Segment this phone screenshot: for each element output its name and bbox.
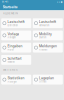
button[interactable]: Lastschrift: [33, 18, 63, 28]
button[interactable]: Mobility: [33, 30, 63, 40]
button[interactable]: Statistiken: [1, 75, 31, 84]
staticText: ▪ ▪ ▮: [57, 0, 62, 3]
button[interactable]: Lastschrift: [1, 18, 31, 28]
staticText: Prüfen: [7, 48, 13, 51]
staticText: Ansehen: [39, 48, 47, 51]
staticText: Wählen: [7, 61, 14, 63]
staticText: Öffnen: [39, 80, 46, 83]
button[interactable]: Eingaben: [1, 43, 31, 52]
staticText: Starten: [39, 36, 46, 39]
staticText: Eingaben: [7, 44, 22, 48]
button[interactable]: Vorlage: [1, 30, 31, 40]
button[interactable]: Meldungen: [33, 43, 63, 52]
staticText: Anzeigen: [7, 80, 16, 83]
staticText: Mobility: [39, 32, 52, 36]
button[interactable]: Lageplan: [33, 75, 63, 84]
staticText: Lastschrift: [7, 20, 24, 24]
staticText: Meldungen: [39, 44, 57, 48]
staticText: Startseite: [3, 5, 18, 9]
staticText: 9:41: [2, 0, 8, 3]
staticText: Anlegen: [7, 36, 15, 39]
staticText: Lageplan: [39, 76, 54, 80]
staticText: Lastschrift: [39, 20, 56, 24]
staticText: ALLGEMEIN: [3, 12, 18, 15]
staticText: Verwalten: [39, 24, 49, 27]
staticText: Schriftart: [7, 56, 21, 60]
staticText: Vorlage: [7, 32, 19, 36]
staticText: WEITERES: [3, 68, 18, 71]
button[interactable]: Schriftart: [1, 55, 31, 65]
staticText: Statistiken: [7, 76, 24, 80]
staticText: Einrichten: [7, 24, 17, 27]
